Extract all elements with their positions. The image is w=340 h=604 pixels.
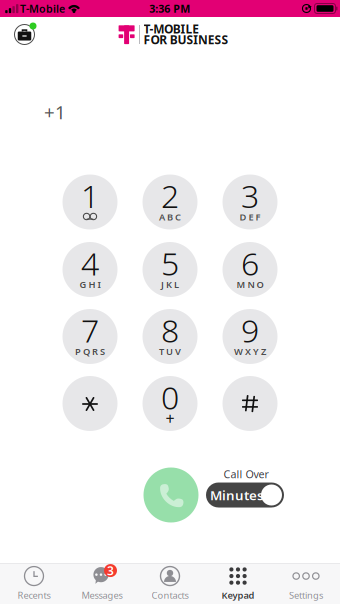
- staticText: 6: [241, 242, 259, 284]
- button[interactable]: [222, 376, 277, 431]
- staticText: 4: [81, 242, 99, 284]
- staticText: 1: [81, 174, 99, 217]
- staticText: 3: [241, 174, 259, 217]
- staticText: 7: [81, 309, 99, 351]
- staticText: Messages: [81, 589, 122, 601]
- staticText: +: [165, 408, 174, 429]
- staticText: Contacts: [151, 589, 188, 601]
- staticText: 3:36 PM: [149, 1, 190, 16]
- staticText: 2: [161, 174, 179, 217]
- button[interactable]: [62, 376, 117, 431]
- button[interactable]: Keypad: [204, 564, 272, 604]
- button[interactable]: Contacts: [136, 564, 204, 604]
- button[interactable]: 5: [142, 242, 197, 297]
- staticText: 8: [161, 309, 179, 351]
- button[interactable]: 6: [222, 242, 277, 297]
- staticText: +1: [44, 100, 66, 124]
- button[interactable]: Call: [143, 467, 198, 522]
- button[interactable]: 3: [68, 564, 136, 604]
- staticText: T-MOBILE: [144, 21, 199, 37]
- staticText: Settings: [289, 589, 323, 601]
- button[interactable]: Recents: [0, 564, 68, 604]
- staticText: A B C: [159, 211, 181, 223]
- button[interactable]: 2: [142, 174, 197, 229]
- button[interactable]: 9: [222, 309, 277, 364]
- button[interactable]: 3: [222, 174, 277, 229]
- staticText: T U V: [159, 345, 181, 357]
- staticText: P Q R S: [75, 345, 105, 357]
- staticText: T-Mobile: [20, 1, 65, 16]
- staticText: G H I: [79, 278, 100, 290]
- button[interactable]: Business profile: [13, 23, 36, 45]
- staticText: W X Y Z: [234, 345, 266, 357]
- staticText: J K L: [161, 278, 179, 290]
- button[interactable]: 7: [62, 309, 117, 364]
- button[interactable]: Minutes: [206, 482, 284, 507]
- staticText: FOR BUSINESS: [144, 32, 228, 47]
- staticText: 9: [241, 309, 259, 351]
- button[interactable]: 4: [62, 242, 117, 297]
- staticText: 0: [161, 376, 179, 418]
- button[interactable]: 8: [142, 309, 197, 364]
- button[interactable]: 1: [62, 174, 117, 229]
- staticText: Keypad: [221, 589, 254, 601]
- staticText: Recents: [17, 589, 50, 601]
- staticText: D E F: [239, 211, 260, 223]
- staticText: Call Over: [223, 467, 268, 481]
- button[interactable]: Settings: [272, 564, 340, 604]
- staticText: Minutes: [210, 486, 264, 504]
- staticText: 3: [107, 563, 114, 578]
- button[interactable]: 0: [142, 376, 197, 431]
- staticText: 5: [161, 242, 179, 284]
- staticText: M N O: [236, 278, 263, 290]
